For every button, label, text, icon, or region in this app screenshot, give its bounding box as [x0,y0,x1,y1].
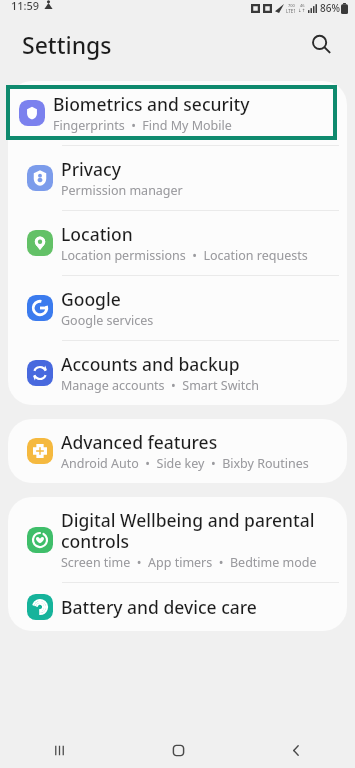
button[interactable]: Biometrics and security [8,81,347,145]
staticText: Android Auto • Side key • Bixby Routines [61,455,309,472]
staticText: Privacy [61,157,121,181]
button[interactable]: Privacy [8,146,347,210]
button[interactable]: Recents [0,732,119,768]
button[interactable]: Search [301,24,341,64]
button[interactable]: Digital Wellbeing and parental controls [8,497,347,582]
button[interactable]: Back [237,732,355,768]
button[interactable]: Battery and device care [8,583,347,631]
button[interactable]: Biometrics and security [10,85,345,140]
staticText: Battery and device care [61,595,257,619]
staticText: Biometrics and security [53,92,250,116]
staticText: 86% [320,1,340,15]
staticText: Google services [61,312,154,329]
button[interactable]: Home [119,732,237,768]
staticText: Permission manager [61,182,183,199]
staticText: Accounts and backup [61,352,240,376]
button[interactable]: Google [8,276,347,340]
staticText: LTE1 [286,8,296,14]
staticText: ↓↑ [298,8,306,13]
staticText: Digital Wellbeing and parental controls [61,508,333,553]
staticText: Screen time • App timers • Bedtime mode [61,554,317,571]
staticText: 46 [300,3,305,8]
staticText: Google [61,287,121,311]
staticText: Advanced features [61,430,218,454]
staticText: Location [61,222,133,246]
button[interactable]: Advanced features [8,419,347,483]
button[interactable]: Accounts and backup [8,341,347,405]
staticText: Biometrics and security [61,92,258,116]
staticText: Manage accounts • Smart Switch [61,377,259,394]
staticText: Fingerprints • Find My Mobile [61,117,240,134]
staticText: Location permissions • Location requests [61,247,308,264]
button[interactable]: Location [8,211,347,275]
staticText: Settings [22,29,112,60]
staticText: 700 [288,3,295,8]
staticText: Fingerprints • Find My Mobile [53,117,232,134]
staticText: 11:59 [11,0,40,13]
